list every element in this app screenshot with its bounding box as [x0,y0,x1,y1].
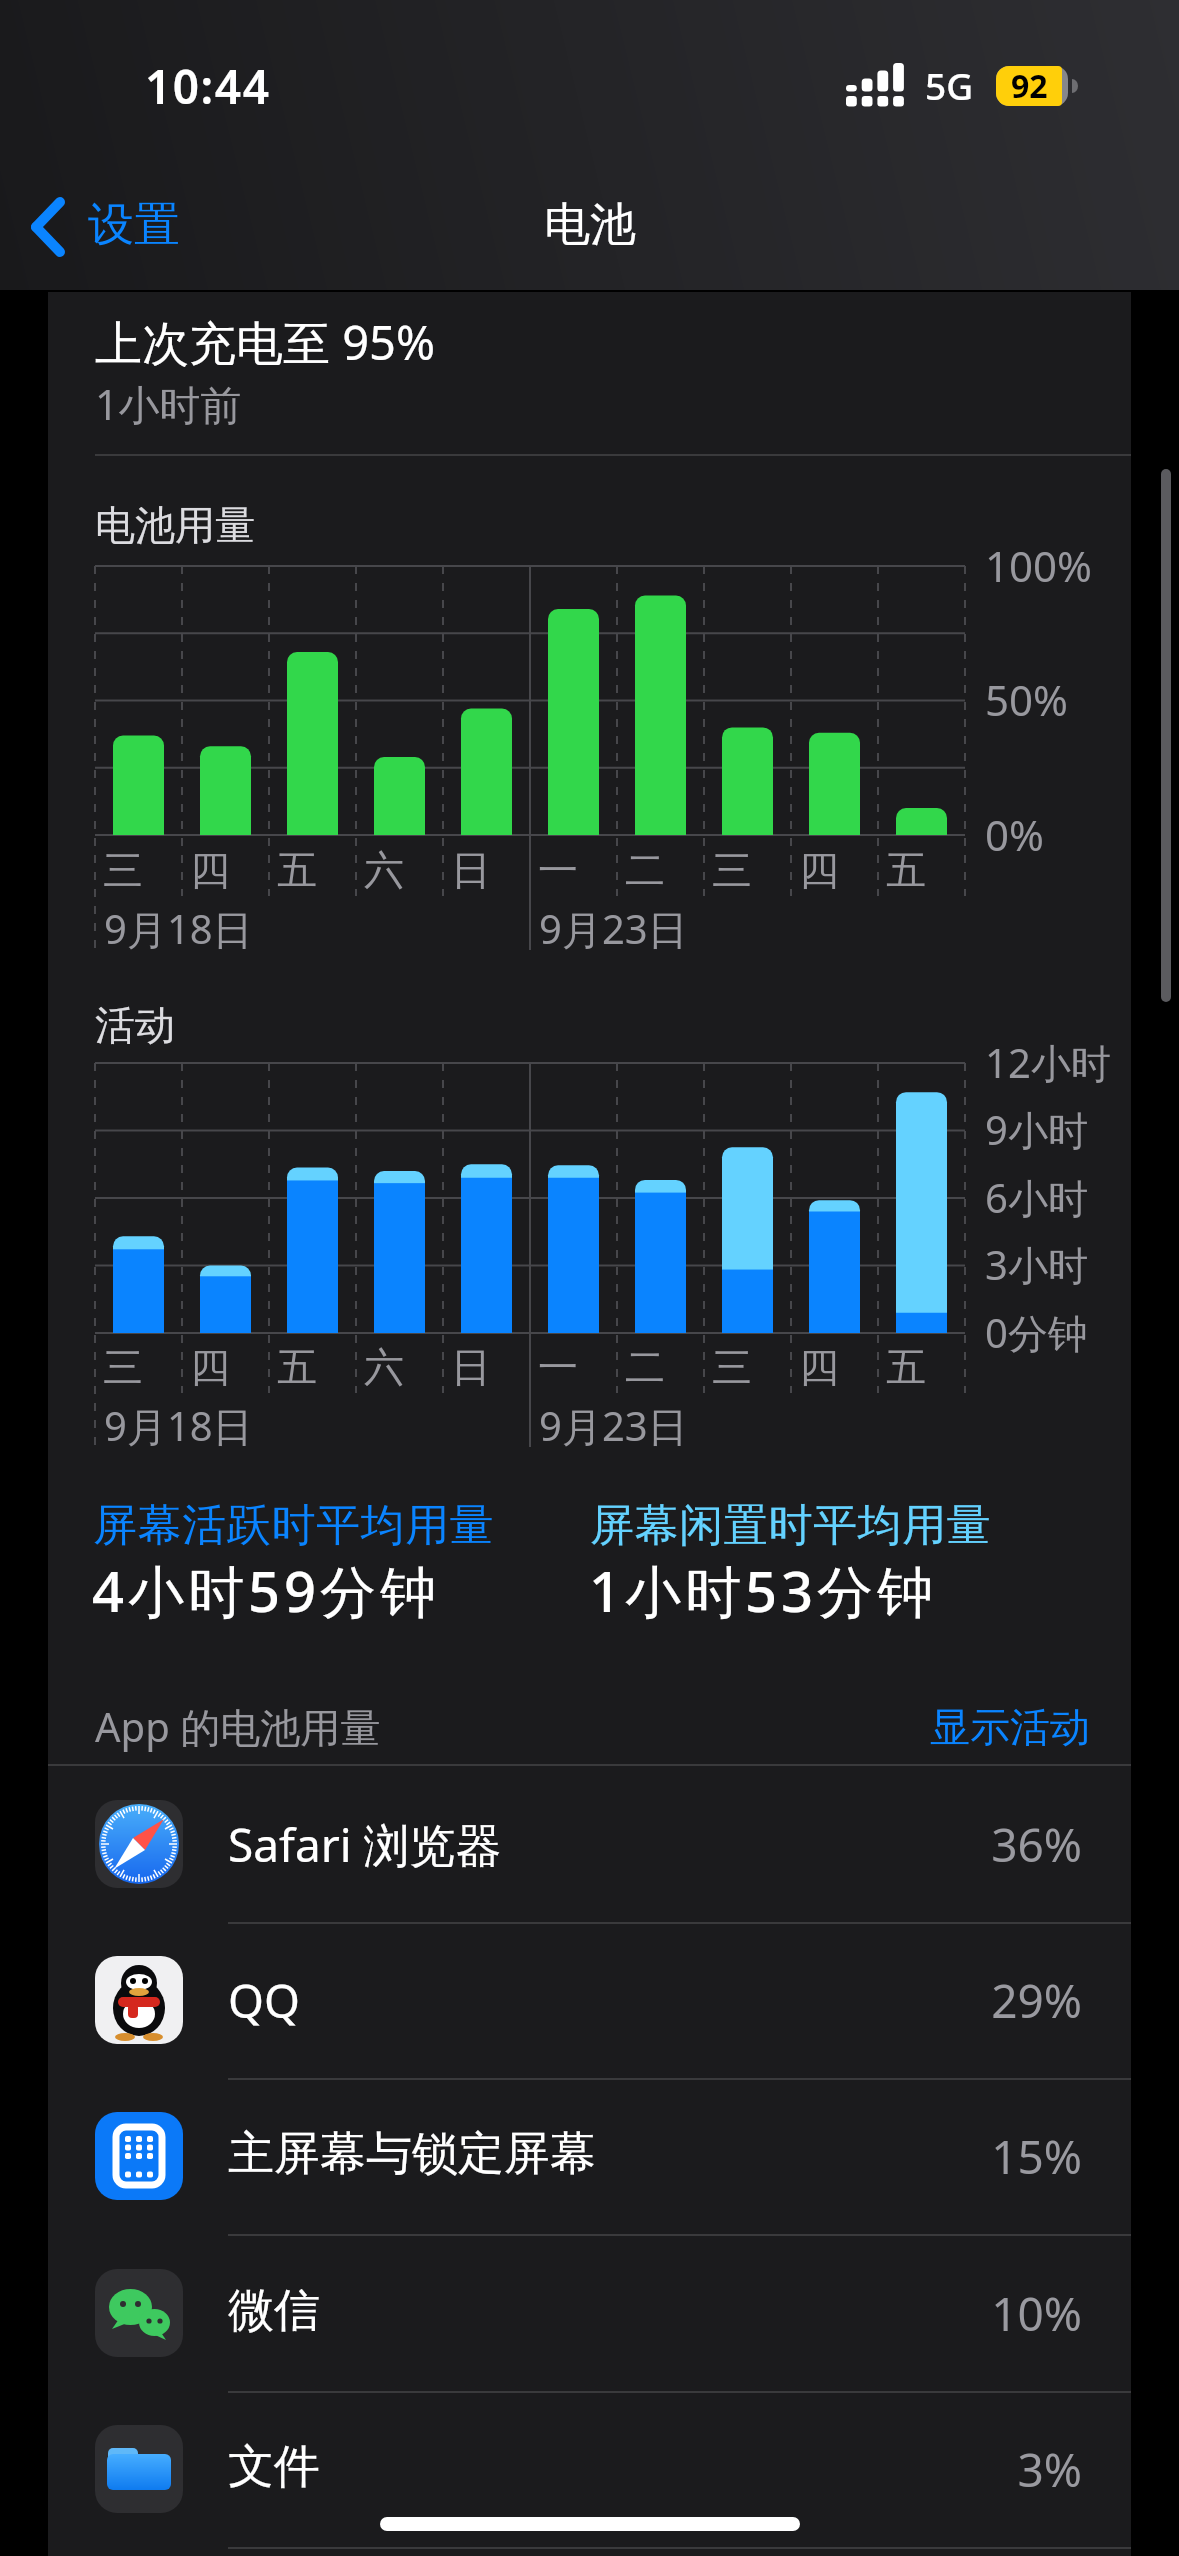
staticText: 五 [277,845,317,895]
button[interactable] [48,1766,1131,1922]
staticText: 0分钟 [985,1305,1088,1360]
staticText: 3小时 [985,1237,1088,1292]
staticText: 日 [451,845,491,895]
staticText: 五 [886,845,926,895]
staticText: 10:44 [145,55,271,118]
staticText: App 的电池用量 [95,1699,381,1754]
staticText: 二 [625,1342,665,1392]
staticText: 微信 [228,2282,320,2340]
staticText: 29% [842,1969,1082,2032]
staticText: 四 [190,1342,230,1392]
staticText: 5G [925,60,974,110]
staticText: 三 [712,845,752,895]
staticText: QQ [228,1969,300,2032]
staticText: 一 [538,1342,578,1392]
staticText: 12小时 [985,1035,1111,1090]
staticText: 9小时 [985,1102,1088,1157]
staticText: 三 [103,845,143,895]
staticText: 9月23日 [539,1398,688,1453]
button[interactable] [48,1922,1131,2078]
staticText: 9月18日 [104,901,253,956]
staticText: 3% [842,2438,1082,2501]
staticText: 50% [985,671,1068,728]
staticText: 活动 [95,1000,175,1050]
staticText: 4小时59分钟 [92,1552,441,1628]
staticText: 6小时 [985,1170,1088,1225]
staticText: 9月23日 [539,901,688,956]
staticText: Safari 浏览器 [228,1813,502,1876]
staticText: 10% [842,2282,1082,2345]
staticText: 六 [364,845,404,895]
staticText: 电池 [544,196,636,254]
staticText: 15% [842,2125,1082,2188]
staticText: 电池用量 [95,500,255,550]
staticText: 四 [190,845,230,895]
staticText: 100% [985,537,1092,594]
button[interactable] [48,2078,1131,2234]
staticText: 0% [985,806,1044,863]
staticText: 1小时53分钟 [589,1552,938,1628]
staticText: 三 [712,1342,752,1392]
staticText: 二 [625,845,665,895]
button[interactable] [48,2235,1131,2391]
staticText: 文件 [228,2438,320,2496]
staticText: 上次充电至 95% [95,310,436,374]
staticText: 日 [451,1342,491,1392]
button[interactable] [48,2391,1131,2547]
staticText: 屏幕闲置时平均用量 [590,1498,992,1553]
staticText: 主屏幕与锁定屏幕 [228,2125,596,2183]
staticText: 9月18日 [104,1398,253,1453]
staticText: 五 [277,1342,317,1392]
staticText: 36% [842,1813,1082,1876]
staticText: 显示活动 [930,1702,1090,1752]
staticText: 四 [799,1342,839,1392]
staticText: 三 [103,1342,143,1392]
staticText: 92 [1011,64,1048,104]
staticText: 五 [886,1342,926,1392]
staticText: 1小时前 [95,376,242,432]
button[interactable] [20,185,220,270]
staticText: 六 [364,1342,404,1392]
staticText: 四 [799,845,839,895]
staticText: 屏幕活跃时平均用量 [93,1498,495,1553]
button[interactable]: 显示活动 [800,1694,1090,1760]
staticText: 设置 [88,196,180,254]
staticText: 一 [538,845,578,895]
